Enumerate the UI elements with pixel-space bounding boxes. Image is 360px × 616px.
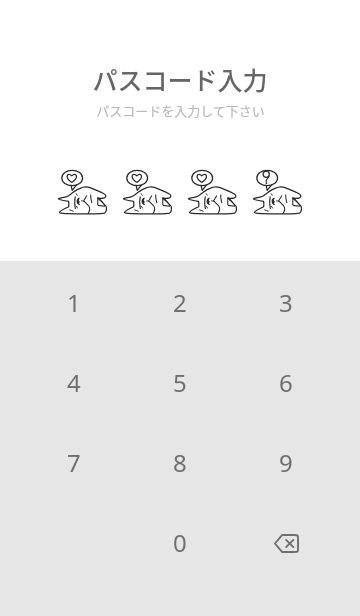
staticText: 4 bbox=[67, 366, 81, 399]
staticText: 3 bbox=[279, 286, 293, 319]
staticText: 8 bbox=[173, 446, 187, 479]
button[interactable]: 7 bbox=[21, 423, 127, 503]
staticText: 0 bbox=[173, 526, 187, 559]
button[interactable]: 0 bbox=[127, 503, 233, 583]
button[interactable]: 5 bbox=[127, 343, 233, 423]
staticText: 5 bbox=[173, 366, 187, 399]
button[interactable]: 6 bbox=[233, 343, 339, 423]
button[interactable]: 9 bbox=[233, 423, 339, 503]
button[interactable]: 3 bbox=[233, 263, 339, 343]
staticText: 1 bbox=[67, 286, 81, 319]
button[interactable]: Backspace bbox=[233, 503, 339, 583]
staticText: 2 bbox=[173, 286, 187, 319]
button[interactable]: 8 bbox=[127, 423, 233, 503]
staticText: 6 bbox=[279, 366, 293, 399]
button[interactable]: 1 bbox=[21, 263, 127, 343]
staticText: 7 bbox=[67, 446, 81, 479]
staticText: パスコードを入力して下さい bbox=[96, 101, 265, 120]
staticText: パスコード入力 bbox=[92, 61, 268, 97]
button[interactable]: 2 bbox=[127, 263, 233, 343]
staticText: 9 bbox=[279, 446, 293, 479]
button[interactable]: 4 bbox=[21, 343, 127, 423]
